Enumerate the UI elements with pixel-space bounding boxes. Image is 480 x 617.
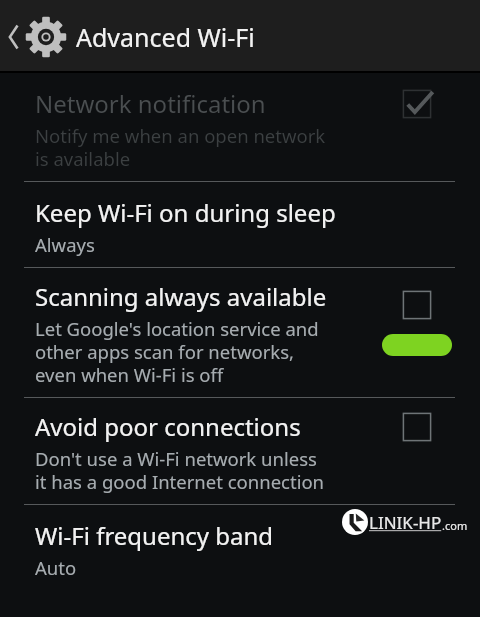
staticText: Auto	[35, 555, 77, 580]
staticText: Network notification	[35, 87, 266, 120]
button[interactable]: Avoid poor connections	[0, 398, 480, 504]
staticText: Don't use a Wi-Fi network unless it has …	[35, 446, 325, 494]
button[interactable]: Network notification	[0, 75, 480, 181]
staticText: LINIK-HP	[369, 511, 442, 534]
button[interactable]: Toggle Avoid poor connections	[378, 410, 456, 444]
staticText: Let Google's location service and other …	[35, 316, 319, 387]
staticText: Advanced Wi-Fi	[76, 20, 255, 54]
staticText: Scanning always available	[35, 280, 327, 313]
staticText: Notify me when an open network is availa…	[35, 123, 326, 171]
staticText: .com	[442, 518, 468, 533]
button[interactable]: Navigate up, Settings	[6, 6, 68, 68]
staticText: Avoid poor connections	[35, 410, 301, 443]
button[interactable]: Toggle Scanning always available	[378, 280, 456, 356]
button[interactable]: Wi-Fi frequency band	[0, 505, 480, 590]
staticText: Wi-Fi frequency band	[35, 519, 274, 552]
staticText: Always	[35, 232, 95, 257]
staticText: Keep Wi-Fi on during sleep	[35, 196, 336, 229]
button[interactable]: Scanning always available	[0, 268, 480, 397]
button[interactable]: Toggle Network notification	[378, 87, 456, 121]
button[interactable]: Keep Wi-Fi on during sleep	[0, 182, 480, 267]
